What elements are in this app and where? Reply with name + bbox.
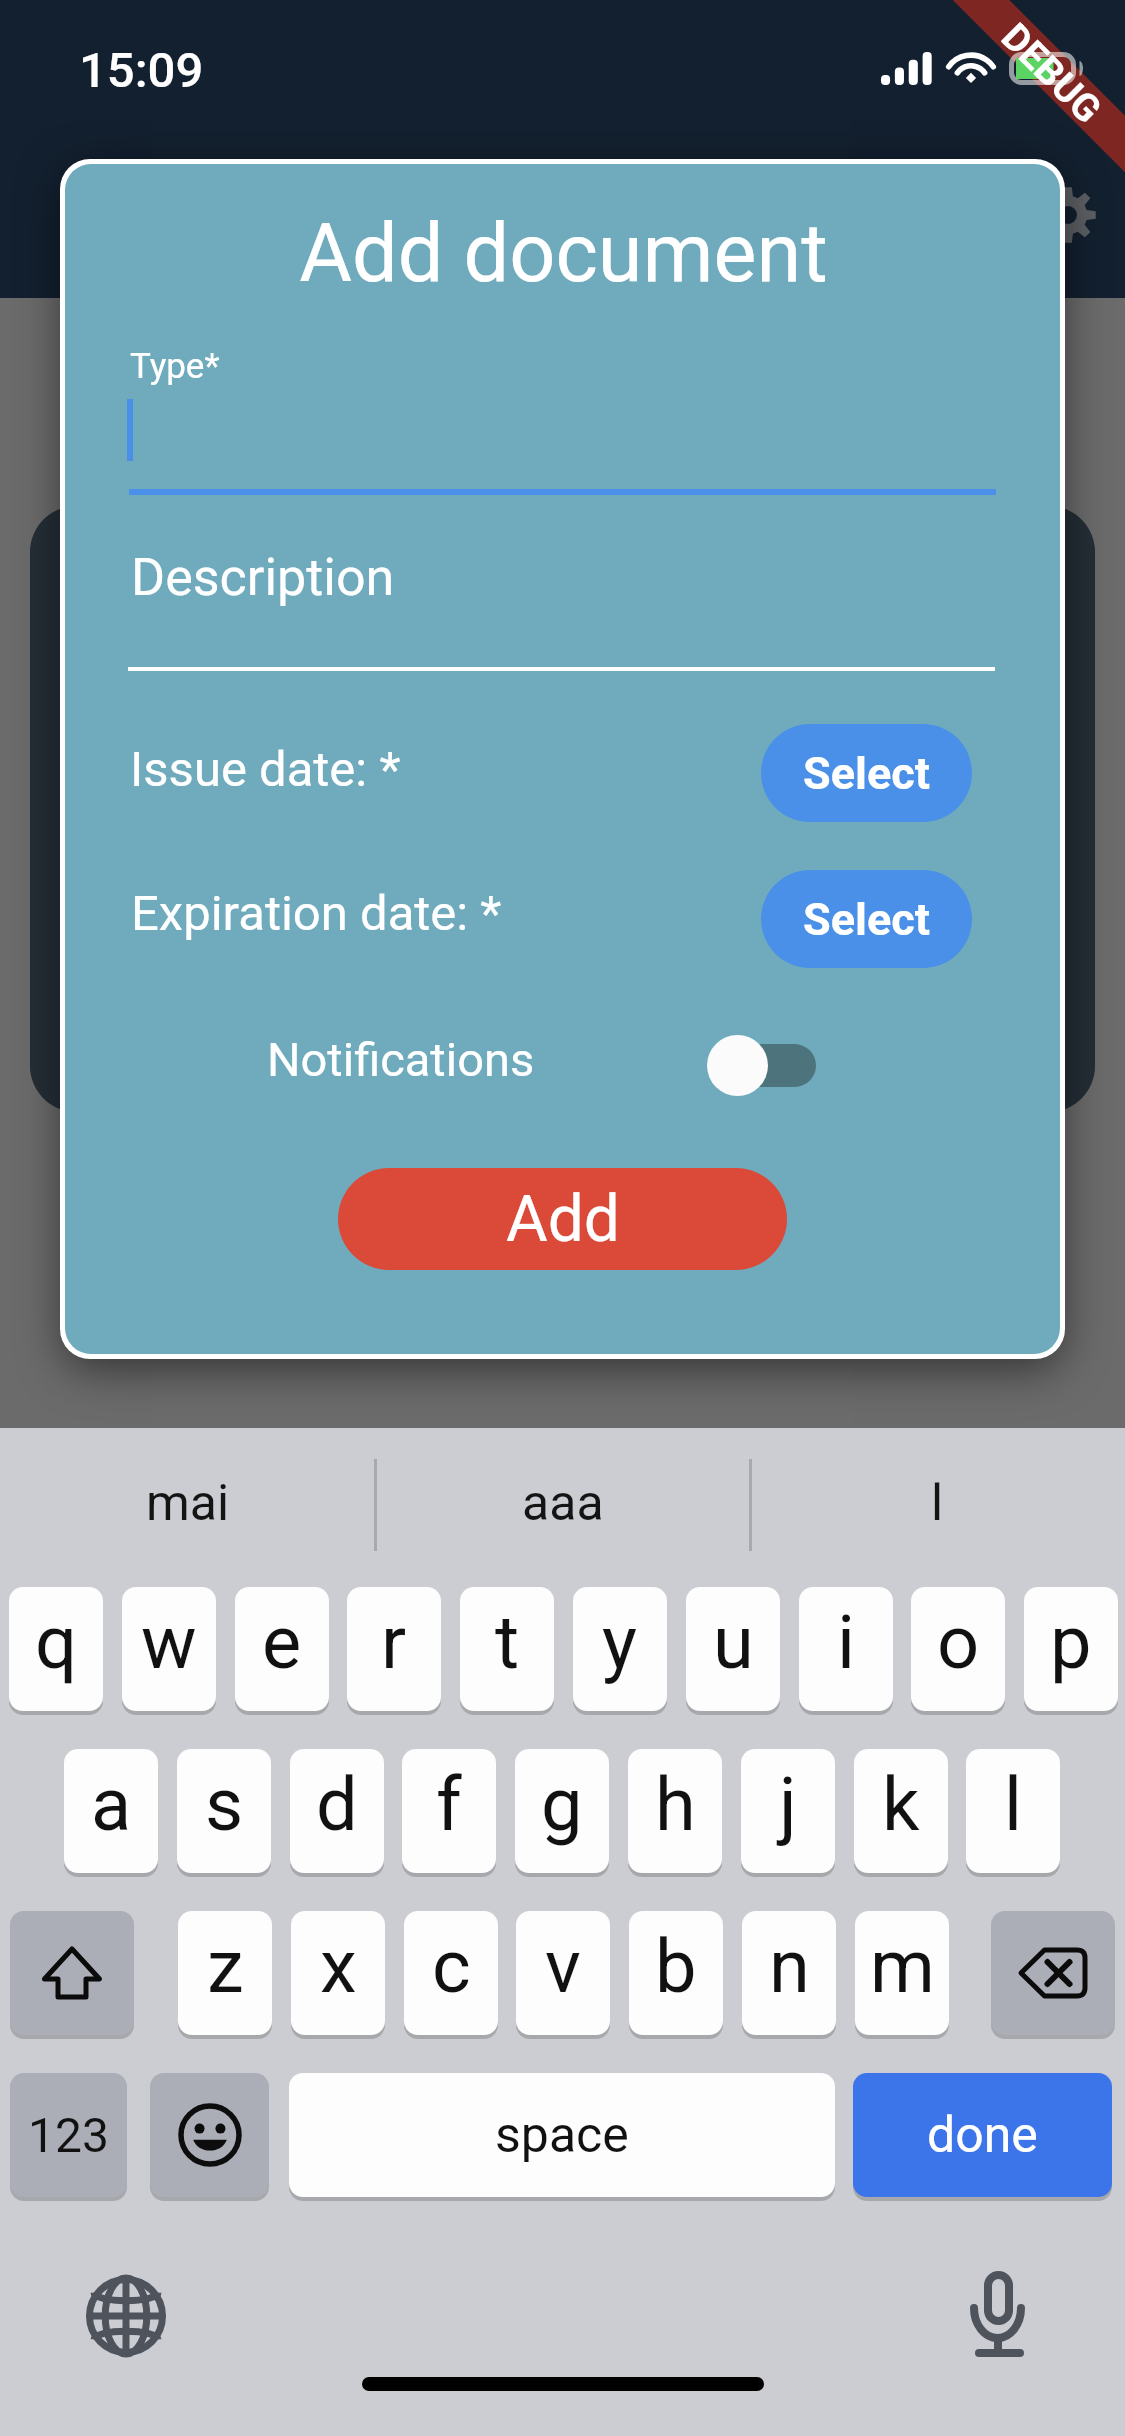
button[interactable]: d xyxy=(290,1749,384,1873)
button[interactable]: k xyxy=(854,1749,948,1873)
button[interactable]: Emoji xyxy=(150,2073,269,2197)
staticText: Type* xyxy=(130,346,220,387)
staticText: z xyxy=(207,1923,244,2010)
staticText: k xyxy=(882,1761,920,1848)
staticText: h xyxy=(655,1761,696,1848)
staticText: x xyxy=(320,1923,357,2010)
staticText: r xyxy=(381,1599,407,1686)
button[interactable]: c xyxy=(404,1911,498,2035)
staticText: a xyxy=(91,1761,132,1848)
button[interactable]: aaa xyxy=(375,1428,750,1578)
staticText: o xyxy=(937,1599,980,1686)
button[interactable]: Select xyxy=(761,724,972,822)
staticText: 123 xyxy=(28,2107,109,2163)
staticText: q xyxy=(35,1599,78,1686)
staticText: s xyxy=(205,1761,244,1848)
button[interactable]: Backspace xyxy=(991,1911,1115,2035)
button[interactable]: Shift xyxy=(10,1911,134,2035)
staticText: j xyxy=(779,1761,797,1848)
button[interactable]: i xyxy=(799,1587,893,1711)
button[interactable]: p xyxy=(1024,1587,1118,1711)
staticText: e xyxy=(262,1599,302,1686)
staticText: Description xyxy=(131,547,395,608)
staticText: Select xyxy=(803,747,930,800)
staticText: DEBUG xyxy=(996,15,1110,129)
staticText: mai xyxy=(146,1474,230,1533)
button[interactable]: n xyxy=(742,1911,836,2035)
staticText: y xyxy=(602,1599,638,1686)
button[interactable]: b xyxy=(629,1911,723,2035)
staticText: c xyxy=(432,1923,471,2010)
staticText: w xyxy=(141,1599,197,1686)
button[interactable]: v xyxy=(516,1911,610,2035)
staticText: Add document xyxy=(66,206,1060,301)
button[interactable]: s xyxy=(177,1749,271,1873)
staticText: aaa xyxy=(522,1474,604,1533)
staticText: v xyxy=(545,1923,581,2010)
button[interactable]: o xyxy=(911,1587,1005,1711)
staticText: p xyxy=(1050,1599,1092,1686)
button[interactable]: l xyxy=(750,1428,1125,1578)
button[interactable]: Numbers xyxy=(10,2073,127,2197)
staticText: u xyxy=(713,1599,754,1686)
staticText: 15:09 xyxy=(79,42,204,99)
staticText: Expiration date: * xyxy=(131,885,502,942)
button[interactable]: r xyxy=(347,1587,441,1711)
button[interactable]: w xyxy=(122,1587,216,1711)
button[interactable]: h xyxy=(628,1749,722,1873)
button[interactable]: Voice input xyxy=(948,2246,1048,2346)
staticText: b xyxy=(655,1923,697,2010)
button[interactable]: x xyxy=(291,1911,385,2035)
button[interactable]: Change keyboard xyxy=(76,2266,176,2366)
button[interactable]: Space xyxy=(289,2073,835,2197)
button[interactable]: Done xyxy=(853,2073,1112,2197)
staticText: done xyxy=(927,2106,1038,2165)
button[interactable]: f xyxy=(402,1749,496,1873)
button[interactable]: Notifications toggle xyxy=(707,1034,816,1096)
button[interactable]: e xyxy=(235,1587,329,1711)
button[interactable]: y xyxy=(573,1587,667,1711)
staticText: Select xyxy=(803,893,930,946)
button[interactable]: Select xyxy=(761,870,972,968)
button[interactable]: l xyxy=(966,1749,1060,1873)
button[interactable]: m xyxy=(855,1911,949,2035)
button[interactable]: j xyxy=(741,1749,835,1873)
staticText: Notifications xyxy=(267,1032,535,1087)
staticText: Issue date: * xyxy=(130,741,401,798)
button[interactable]: q xyxy=(9,1587,103,1711)
button[interactable]: t xyxy=(460,1587,554,1711)
staticText: d xyxy=(316,1761,358,1848)
staticText: n xyxy=(769,1923,810,2010)
staticText: l xyxy=(931,1474,944,1533)
staticText: t xyxy=(495,1599,520,1686)
staticText: f xyxy=(436,1761,462,1848)
button[interactable]: u xyxy=(686,1587,780,1711)
button[interactable]: mai xyxy=(0,1428,375,1578)
button[interactable]: z xyxy=(178,1911,272,2035)
button[interactable]: a xyxy=(64,1749,158,1873)
button[interactable]: g xyxy=(515,1749,609,1873)
button[interactable]: Add xyxy=(338,1168,787,1270)
staticText: Add xyxy=(506,1182,620,1257)
staticText: i xyxy=(837,1599,855,1686)
staticText: space xyxy=(495,2106,629,2165)
staticText: m xyxy=(870,1923,935,2010)
staticText: l xyxy=(1004,1761,1022,1848)
staticText: g xyxy=(541,1761,583,1848)
